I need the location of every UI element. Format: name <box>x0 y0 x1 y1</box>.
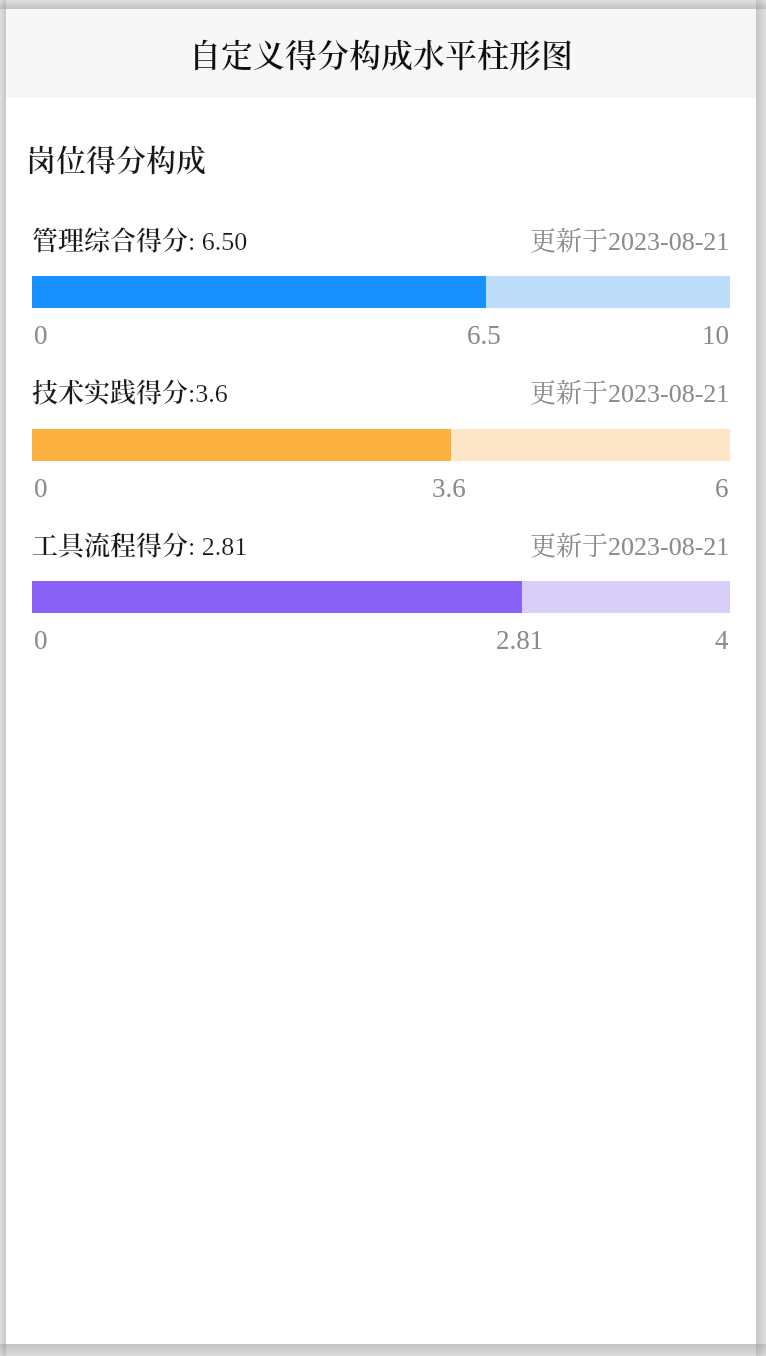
staticText: 6 <box>715 473 729 499</box>
staticText: 0 <box>34 625 48 651</box>
button[interactable] <box>32 276 730 308</box>
button[interactable]: 工具流程得分: 2.81 <box>32 525 730 562</box>
staticText: 0 <box>34 473 48 499</box>
staticText: 6.5 <box>467 320 501 346</box>
staticText: 更新于2023-08-21 <box>530 525 730 562</box>
staticText: 更新于2023-08-21 <box>530 372 730 409</box>
button[interactable]: 技术实践得分:3.6 <box>32 372 730 409</box>
button[interactable]: 管理综合得分: 6.50 <box>32 220 730 257</box>
staticText: 3.6 <box>432 473 466 499</box>
button[interactable] <box>32 429 730 461</box>
staticText: 更新于2023-08-21 <box>530 220 730 257</box>
staticText: 工具流程得分: 2.81 <box>32 525 248 562</box>
staticText: 2.81 <box>496 625 544 651</box>
staticText: 自定义得分构成水平柱形图 <box>189 30 574 76</box>
staticText: 10 <box>702 320 729 346</box>
button[interactable] <box>32 581 730 613</box>
staticText: 4 <box>715 625 729 651</box>
staticText: 技术实践得分:3.6 <box>32 372 228 409</box>
button[interactable]: 自定义得分构成水平柱形图 <box>6 9 756 98</box>
staticText: 岗位得分构成 <box>26 136 206 179</box>
staticText: 管理综合得分: 6.50 <box>32 220 248 257</box>
staticText: 0 <box>34 320 48 346</box>
